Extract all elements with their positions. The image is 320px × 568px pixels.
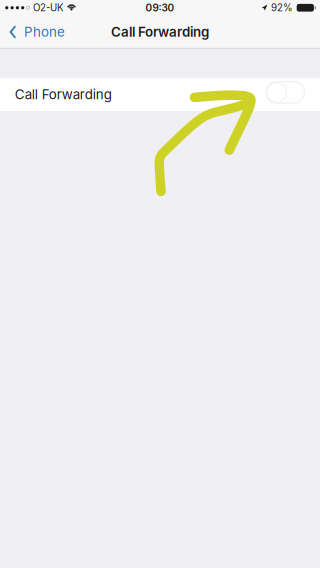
staticText: O2-UK: [33, 2, 64, 14]
staticText: Call Forwarding: [111, 24, 209, 40]
staticText: Call Forwarding: [15, 86, 112, 102]
staticText: 92%: [271, 2, 293, 14]
staticText: Phone: [24, 24, 65, 40]
button[interactable]: Phone: [0, 15, 75, 48]
staticText: 09:30: [145, 2, 174, 14]
button[interactable]: Call Forwarding: [0, 78, 320, 111]
